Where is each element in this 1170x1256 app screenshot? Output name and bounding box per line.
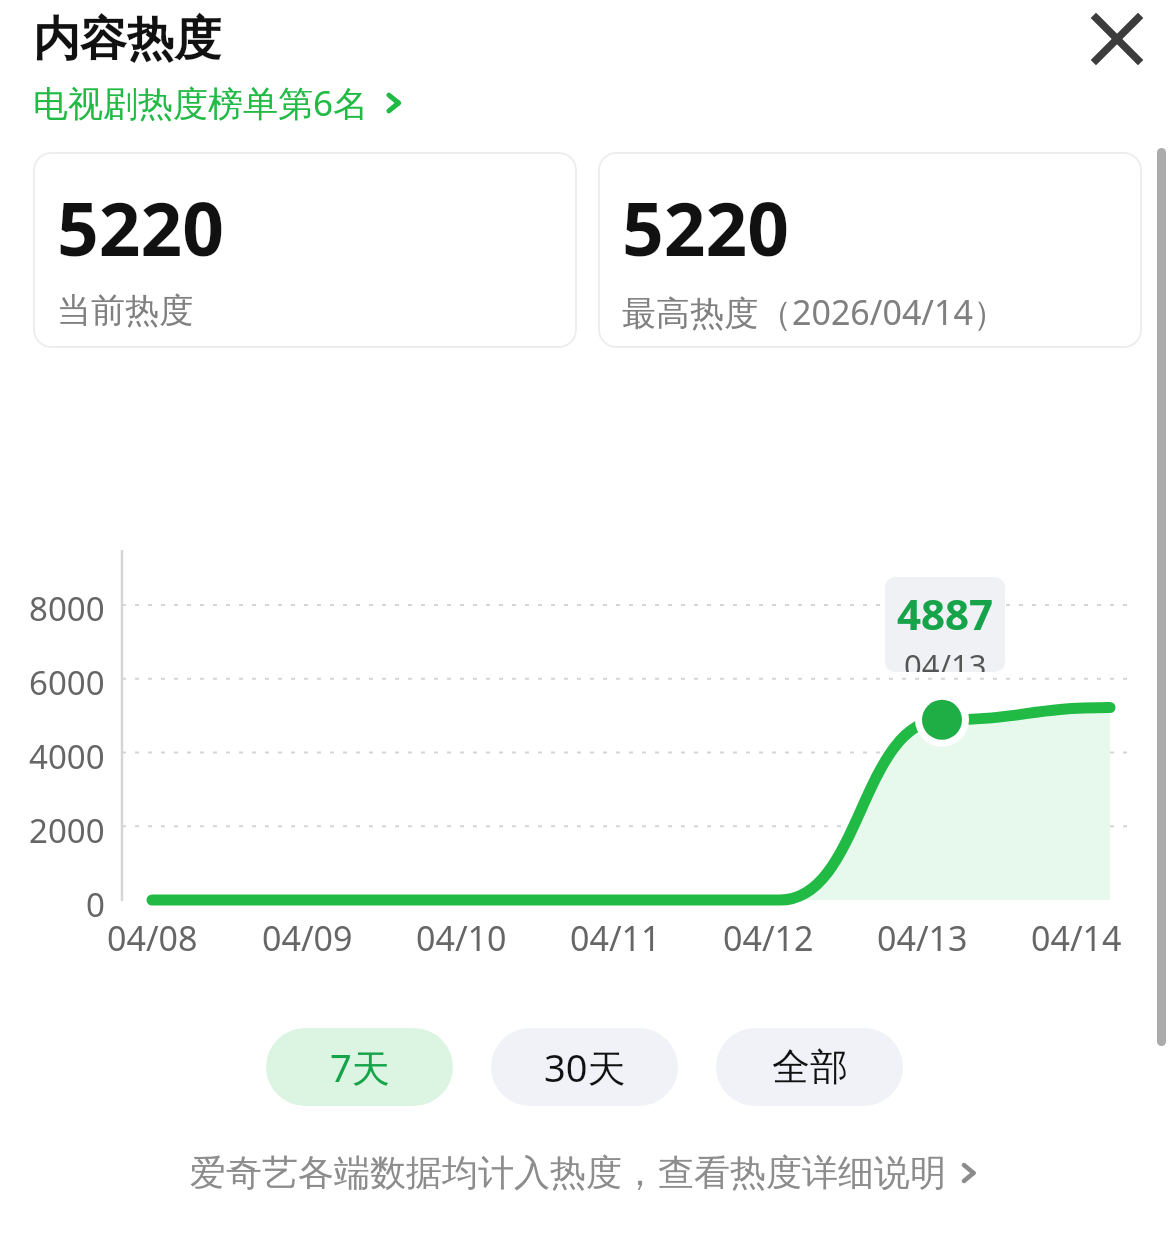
staticText: 04/13 [877, 915, 968, 961]
button[interactable]: 全部 [716, 1028, 903, 1106]
staticText: 内容热度 [33, 10, 221, 69]
button[interactable]: 7天 [266, 1028, 453, 1106]
staticText: 30天 [544, 1041, 626, 1093]
staticText: 04/12 [723, 915, 814, 961]
staticText: 04/13 [904, 644, 987, 672]
button[interactable]: 5220 [598, 152, 1142, 348]
staticText: 4887 [897, 585, 994, 642]
staticText: 2000 [29, 808, 105, 853]
staticText: 最高热度（2026/04/14） [622, 289, 1007, 335]
button[interactable]: 30天 [491, 1028, 678, 1106]
staticText: 当前热度 [57, 289, 193, 332]
staticText: 电视剧热度榜单第6名 [33, 79, 369, 127]
staticText: 7天 [330, 1041, 390, 1093]
button[interactable]: Close [1082, 4, 1152, 74]
staticText: 5220 [622, 178, 790, 277]
staticText: 04/14 [1031, 915, 1122, 961]
staticText: 4000 [29, 734, 105, 779]
button[interactable]: 5220 [33, 152, 577, 348]
staticText: 6000 [29, 660, 105, 705]
staticText: 04/10 [416, 915, 507, 961]
staticText: 爱奇艺各端数据均计入热度，查看热度详细说明 [190, 1150, 946, 1195]
staticText: 5220 [57, 178, 225, 277]
button[interactable]: 爱奇艺各端数据均计入热度，查看热度详细说明 [0, 1150, 1170, 1195]
staticText: 0 [86, 882, 105, 927]
staticText: 04/09 [262, 915, 353, 961]
staticText: 04/08 [107, 915, 198, 961]
staticText: 8000 [29, 586, 105, 631]
button[interactable]: 电视剧热度榜单第6名 [33, 79, 405, 127]
staticText: 04/11 [570, 915, 661, 961]
staticText: 全部 [772, 1043, 848, 1091]
